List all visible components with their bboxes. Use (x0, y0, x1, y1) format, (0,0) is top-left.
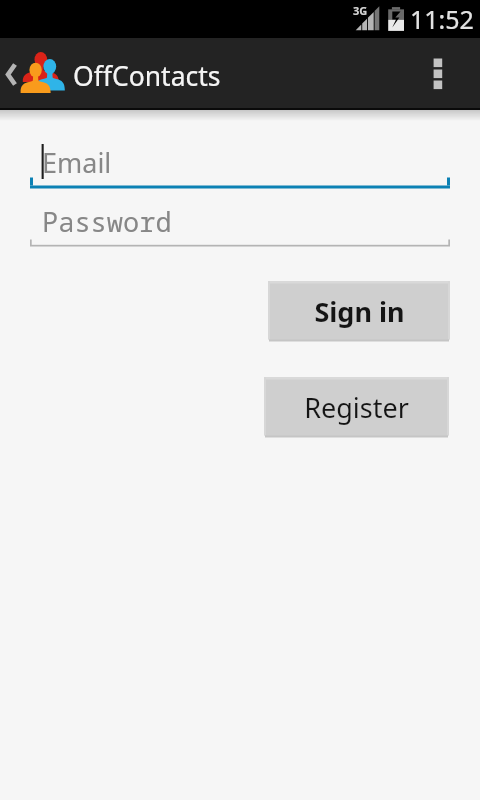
staticText: Sign in (314, 293, 405, 330)
button[interactable]: Register (264, 377, 449, 437)
button[interactable]: Navigate up (0, 38, 74, 109)
staticText: OffContacts (73, 58, 221, 94)
button[interactable]: More options (418, 38, 480, 109)
staticText: Register (304, 389, 409, 426)
staticText: 11:52 (410, 2, 474, 36)
staticText: 3G (353, 3, 368, 18)
staticText: Password (42, 203, 172, 240)
staticText: Email (42, 144, 112, 181)
button[interactable]: Email (30, 140, 450, 190)
button[interactable]: Password (30, 200, 450, 248)
button[interactable]: Sign in (268, 281, 450, 341)
